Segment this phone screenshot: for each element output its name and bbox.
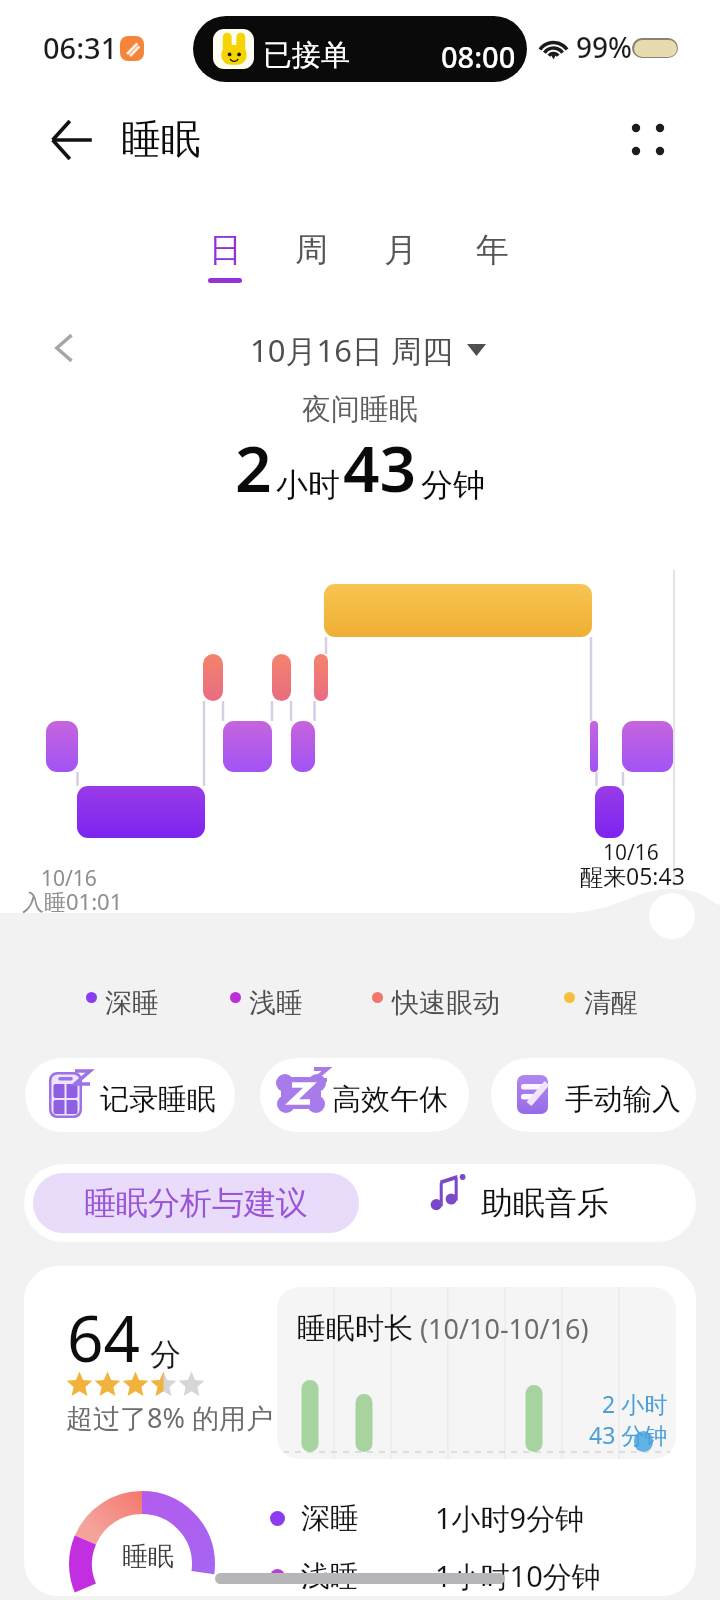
button[interactable]: 周: [268, 215, 354, 301]
button[interactable]: 年: [449, 215, 535, 301]
staticText: 睡眠分析与建议: [84, 1183, 308, 1223]
staticText: 99%: [576, 28, 632, 66]
staticText: 分钟: [421, 465, 485, 505]
button[interactable]: 助眠音乐: [359, 1164, 696, 1242]
button[interactable]: Expand chart: [649, 893, 695, 939]
button[interactable]: 10月16日 周四: [250, 320, 486, 380]
staticText: 睡眠: [122, 1540, 174, 1573]
staticText: 高效午休: [332, 1081, 448, 1118]
button[interactable]: 日: [182, 215, 268, 301]
staticText: 月: [384, 229, 417, 271]
button[interactable]: Order notification: [193, 16, 527, 82]
staticText: 手动输入: [565, 1081, 681, 1118]
staticText: (10/10-10/16): [420, 1310, 589, 1347]
button[interactable]: 记录睡眠: [25, 1058, 235, 1132]
staticText: 超过了8% 的用户: [66, 1399, 273, 1436]
staticText: 06:31: [43, 28, 118, 67]
staticText: 64: [67, 1294, 141, 1381]
staticText: 浅睡: [301, 1558, 359, 1595]
staticText: 周: [295, 229, 328, 271]
staticText: 1小时9分钟: [435, 1498, 585, 1538]
staticText: 分: [150, 1335, 181, 1374]
button[interactable]: 睡眠分析与建议: [33, 1173, 359, 1233]
button[interactable]: Previous day: [36, 320, 92, 376]
staticText: 浅睡: [249, 986, 303, 1020]
button[interactable]: 月: [357, 215, 443, 301]
button[interactable]: Back: [42, 110, 102, 170]
button[interactable]: 手动输入: [491, 1058, 696, 1132]
staticText: 深睡: [105, 986, 159, 1020]
staticText: 10/16: [41, 864, 97, 893]
staticText: 2: [235, 424, 272, 511]
staticText: 睡眠时长: [297, 1310, 413, 1347]
staticText: 1小时10分钟: [435, 1556, 601, 1596]
staticText: 小时: [276, 465, 340, 505]
staticText: 10/16: [603, 838, 659, 867]
staticText: 快速眼动: [392, 986, 500, 1020]
staticText: 43 分钟: [589, 1419, 668, 1450]
staticText: 清醒: [584, 986, 638, 1020]
staticText: 助眠音乐: [481, 1183, 609, 1223]
staticText: 10月16日 周四: [250, 329, 453, 371]
staticText: 已接单: [263, 37, 350, 74]
staticText: 睡眠: [121, 114, 201, 164]
staticText: 夜间睡眠: [302, 391, 418, 428]
staticText: 深睡: [301, 1500, 359, 1537]
staticText: 年: [476, 229, 509, 271]
button[interactable]: 睡眠时长: [277, 1287, 676, 1459]
staticText: 日: [209, 229, 242, 271]
button[interactable]: 高效午休: [260, 1058, 469, 1132]
button[interactable]: More options: [614, 106, 682, 174]
staticText: 08:00: [441, 37, 516, 76]
staticText: 2 小时: [602, 1388, 668, 1419]
staticText: 入睡01:01: [22, 886, 123, 916]
staticText: 记录睡眠: [100, 1081, 216, 1118]
staticText: 43: [343, 424, 417, 511]
staticText: 醒来05:43: [580, 860, 685, 891]
